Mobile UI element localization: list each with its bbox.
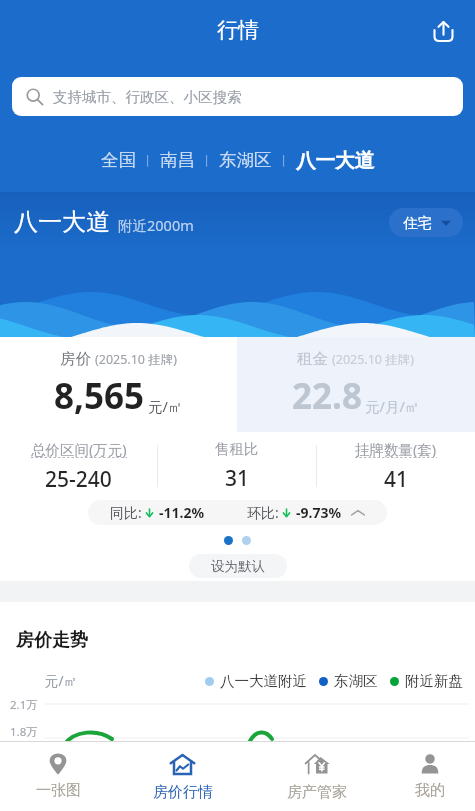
staticText: 8,565 (54, 372, 145, 420)
button[interactable]: 支持城市、行政区、小区搜索 (12, 77, 463, 116)
staticText: 41 (384, 465, 409, 494)
button[interactable]: 南昌 (160, 149, 195, 171)
staticText: 我的 (415, 781, 445, 800)
button[interactable]: 全国 (101, 149, 136, 171)
staticText: 丨 (142, 153, 154, 168)
staticText: 附近2000m (118, 215, 194, 235)
staticText: 元/㎡ (148, 396, 183, 416)
staticText: 丨 (201, 153, 213, 168)
staticText: 东湖区 (334, 672, 378, 690)
staticText: 房产管家 (287, 783, 347, 802)
staticText: 附近新盘 (405, 672, 463, 690)
button[interactable]: 一张图 (0, 742, 116, 811)
staticText: 同比: (110, 503, 142, 522)
button[interactable]: 房产管家 (249, 742, 385, 811)
staticText: 住宅 (403, 214, 432, 232)
button[interactable]: 设为默认 (189, 554, 287, 578)
button[interactable]: 我的 (385, 742, 475, 811)
staticText: 丨 (278, 153, 290, 168)
other: Collapse (351, 506, 365, 520)
staticText: 支持城市、行政区、小区搜索 (53, 88, 242, 106)
staticText: 元/㎡ (45, 672, 78, 690)
staticText: 八一大道附近 (220, 672, 307, 690)
button[interactable]: 售租比 (158, 440, 316, 493)
staticText: 22.8 (292, 372, 362, 420)
staticText: 行情 (217, 17, 259, 43)
button[interactable]: 东湖区 (219, 149, 272, 171)
button[interactable]: 总价区间(万元) (0, 439, 157, 494)
staticText: 房价 (60, 349, 91, 369)
button[interactable]: Share (421, 9, 465, 53)
staticText: (2025.10 挂牌) (332, 351, 415, 368)
staticText: 31 (225, 464, 250, 493)
staticText: 房价行情 (153, 783, 213, 802)
button[interactable]: 住宅 (389, 208, 463, 237)
button[interactable]: 房价 (0, 337, 237, 432)
staticText: (2025.10 挂牌) (95, 351, 178, 368)
staticText: 元/月/㎡ (365, 396, 420, 416)
staticText: 2.1万 (10, 697, 38, 713)
staticText: 租金 (297, 349, 328, 369)
staticText: -9.73% (296, 503, 342, 522)
staticText: -11.2% (159, 503, 205, 522)
staticText: 一张图 (36, 781, 81, 800)
staticText: 售租比 (215, 440, 259, 458)
button[interactable]: 八一大道 (296, 148, 374, 173)
button[interactable]: 租金 (237, 337, 475, 432)
staticText: 挂牌数量(套) (355, 439, 437, 459)
staticText: 1.8万 (10, 724, 38, 740)
button[interactable]: 房价行情 (116, 742, 249, 811)
staticText: 总价区间(万元) (31, 439, 127, 459)
staticText: 房价走势 (16, 629, 88, 652)
button[interactable]: 同比: (88, 500, 387, 525)
staticText: 八一大道 (14, 207, 110, 237)
staticText: 环比: (247, 503, 279, 522)
staticText: 25-240 (45, 465, 112, 494)
button[interactable]: 挂牌数量(套) (317, 439, 475, 494)
staticText: 设为默认 (211, 558, 265, 575)
